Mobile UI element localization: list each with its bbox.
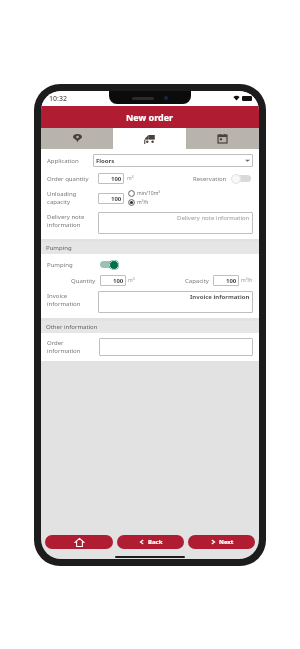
- staticText: 100: [226, 277, 237, 285]
- button[interactable]: Next: [188, 535, 255, 549]
- staticText: 100: [113, 277, 124, 285]
- staticText: capacity: [47, 198, 70, 206]
- staticText: Back: [148, 538, 163, 546]
- button[interactable]: Invoice information: [98, 291, 253, 313]
- staticText: New order: [126, 111, 174, 123]
- button[interactable]: Delivery note information: [98, 212, 253, 234]
- button[interactable]: Home: [45, 535, 113, 549]
- staticText: Application: [47, 157, 93, 165]
- staticText: information: [47, 300, 81, 308]
- staticText: 100: [111, 175, 122, 183]
- staticText: Order information: [47, 339, 97, 355]
- button[interactable]: [98, 259, 120, 270]
- staticText: min/10m³: [137, 190, 161, 197]
- button[interactable]: [231, 173, 253, 184]
- staticText: Invoice information: [190, 293, 250, 301]
- button[interactable]: Back: [117, 535, 184, 549]
- button[interactable]: min/10m³: [128, 190, 161, 197]
- staticText: Floors: [96, 157, 115, 165]
- staticText: Pumping: [46, 244, 72, 252]
- staticText: Pumping: [47, 261, 93, 269]
- staticText: Order quantity: [47, 175, 93, 183]
- button[interactable]: [99, 338, 253, 356]
- staticText: Delivery note information: [177, 214, 250, 222]
- button[interactable]: Floors: [93, 154, 253, 167]
- staticText: Quantity: [71, 277, 96, 285]
- staticText: Reservation: [193, 175, 227, 183]
- staticText: Capacity: [185, 277, 209, 285]
- button[interactable]: Location: [41, 128, 113, 149]
- staticText: m³/h: [241, 277, 253, 284]
- staticText: m³: [128, 277, 135, 284]
- staticText: m³: [127, 175, 134, 182]
- staticText: m³/h: [137, 199, 149, 206]
- staticText: Invoice: [47, 292, 68, 300]
- button[interactable]: Order: [113, 128, 186, 149]
- staticText: information: [47, 221, 81, 229]
- staticText: 10:32: [49, 94, 67, 104]
- staticText: Delivery note: [47, 213, 85, 221]
- staticText: Other information: [46, 323, 98, 331]
- staticText: Unloading: [47, 190, 77, 198]
- button[interactable]: m³/h: [128, 199, 149, 206]
- staticText: 100: [111, 195, 122, 203]
- button[interactable]: Schedule: [186, 128, 259, 149]
- staticText: Next: [219, 538, 234, 546]
